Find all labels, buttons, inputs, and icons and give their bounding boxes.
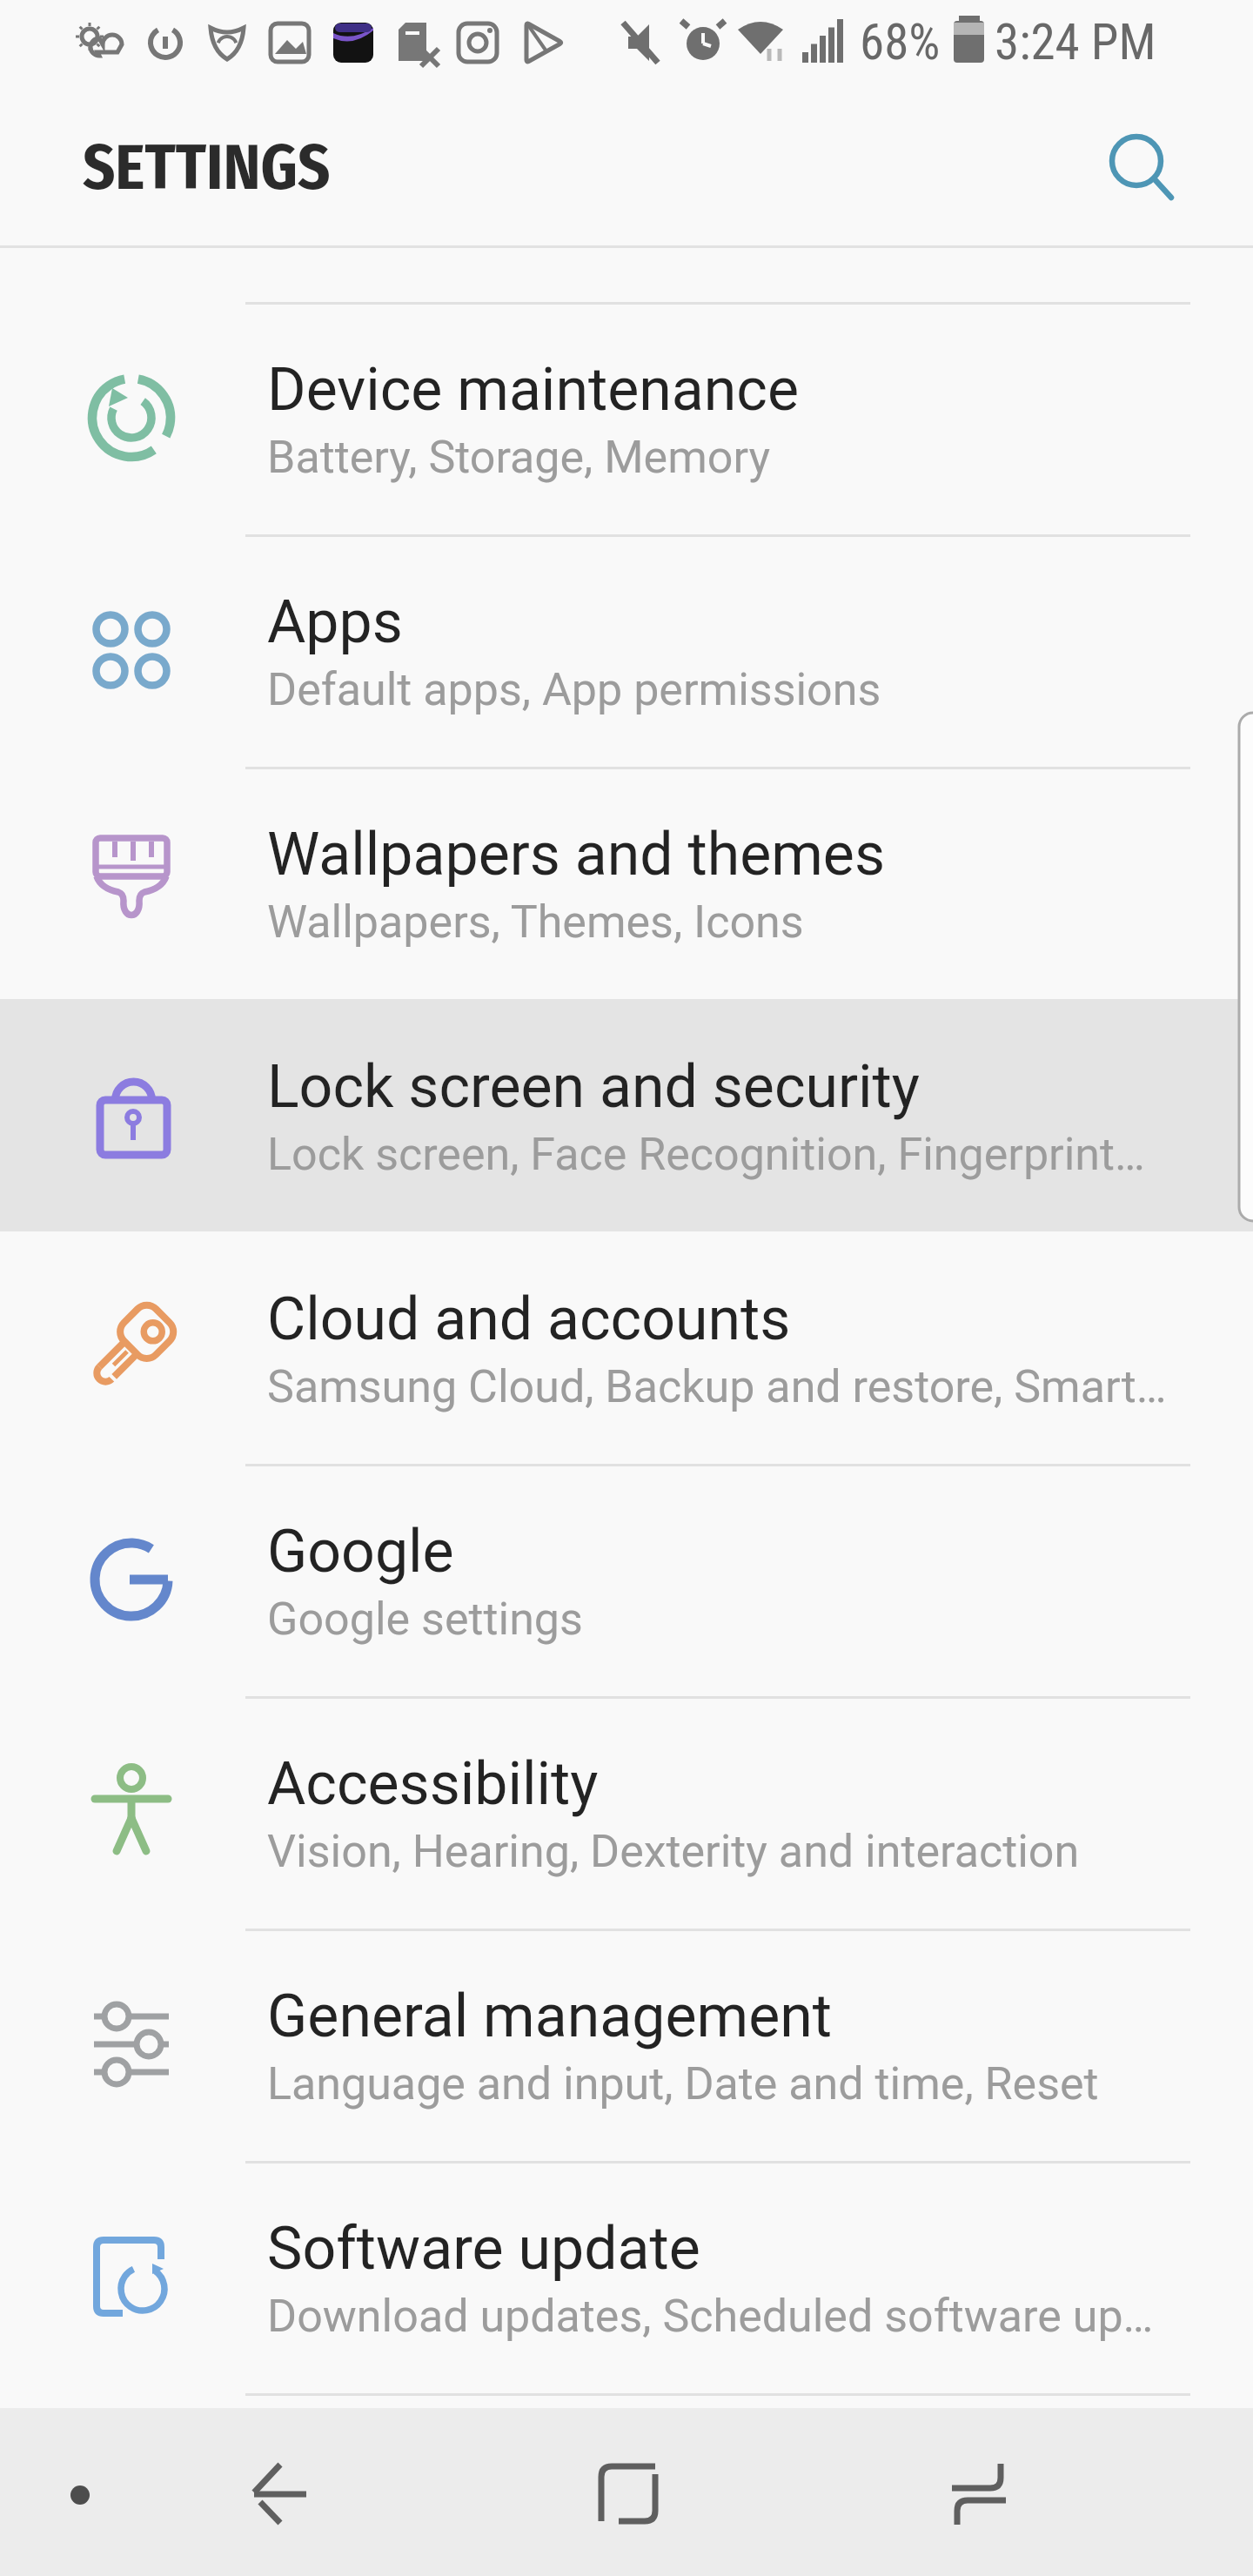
staticText: Software update [267,2214,700,2284]
staticText: Samsung Cloud, Backup and restore, Smart… [267,1360,1167,1413]
staticText: General management [267,1982,832,2051]
button[interactable]: Accessibility [0,1696,1253,1929]
staticText: SETTINGS [83,131,331,205]
staticText: Lock screen and security [267,1052,920,1122]
button[interactable] [576,2443,680,2547]
staticText: Accessibility [267,1749,599,1819]
staticText: Wallpapers, Themes, Icons [267,896,804,949]
staticText: Google [267,1517,454,1587]
staticText: Download updates, Scheduled software up… [267,2290,1154,2343]
staticText: Language and input, Date and time, Reset [267,2057,1099,2110]
button[interactable]: Google [0,1464,1253,1696]
staticText: Device maintenance [267,355,800,425]
button[interactable]: Apps [0,534,1253,767]
button[interactable]: General management [0,1929,1253,2161]
staticText: Google settings [267,1593,583,1646]
button[interactable]: Wallpapers and themes [0,767,1253,999]
button[interactable]: Software update [0,2161,1253,2393]
staticText: 68% [860,13,941,71]
staticText: Wallpapers and themes [267,820,886,889]
button[interactable] [223,2443,327,2547]
staticText: Vision, Hearing, Dexterity and interacti… [267,1825,1080,1878]
staticText: Default apps, App permissions [267,663,881,716]
button[interactable]: Cloud and accounts [0,1231,1253,1464]
staticText: Lock screen, Face Recognition, Fingerpri… [267,1128,1145,1181]
staticText: 3:24 PM [995,13,1156,71]
button[interactable]: Device maintenance [0,302,1253,534]
button[interactable]: Lock screen and security [0,999,1253,1231]
staticText: Cloud and accounts [267,1285,791,1354]
button[interactable] [927,2443,1031,2547]
button[interactable] [1098,123,1182,206]
staticText: Apps [267,587,403,657]
staticText: Battery, Storage, Memory [267,431,771,484]
